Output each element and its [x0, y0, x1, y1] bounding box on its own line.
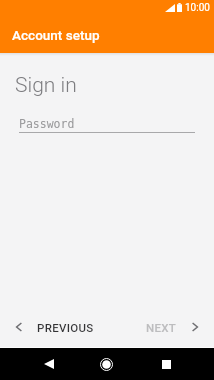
button[interactable]: Home — [90, 348, 123, 380]
button[interactable]: PREVIOUS — [0, 313, 107, 341]
button[interactable]: NEXT — [107, 313, 214, 341]
button[interactable]: Password — [19, 110, 195, 133]
staticText: NEXT — [146, 321, 177, 334]
staticText: Sign in — [15, 73, 77, 98]
staticText: Account setup — [12, 27, 100, 43]
staticText: 10:00 — [185, 2, 210, 14]
button[interactable]: Recent apps — [150, 348, 183, 380]
staticText: PREVIOUS — [37, 321, 94, 334]
button[interactable]: Back — [32, 348, 65, 380]
staticText: Password — [19, 117, 75, 130]
